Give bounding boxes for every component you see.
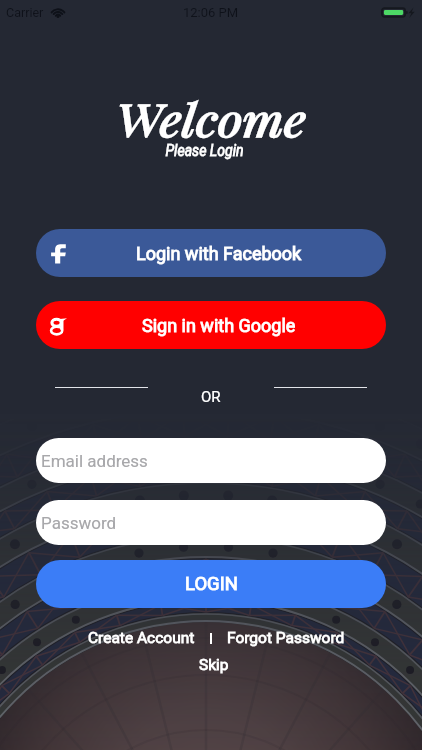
button[interactable]: LOGIN bbox=[36, 560, 386, 608]
staticText: Carrier bbox=[6, 5, 44, 20]
button[interactable]: Create Account bbox=[86, 627, 197, 649]
button[interactable]: Sign in with Google bbox=[36, 301, 386, 349]
staticText: Sign in with Google bbox=[142, 315, 296, 336]
button[interactable]: Email address bbox=[36, 438, 386, 483]
button[interactable]: Login with Facebook bbox=[36, 229, 386, 277]
button[interactable]: Password bbox=[36, 500, 386, 545]
staticText: Login with Facebook bbox=[136, 243, 302, 264]
staticText: OR bbox=[201, 388, 221, 406]
staticText: Skip bbox=[199, 656, 229, 674]
staticText: Please Login bbox=[165, 141, 244, 160]
staticText: Password bbox=[41, 513, 117, 533]
staticText: LOGIN bbox=[185, 573, 238, 595]
staticText: Forgot Password bbox=[227, 629, 345, 647]
staticText: Create Account bbox=[88, 629, 195, 647]
staticText: Welcome bbox=[116, 90, 306, 148]
button[interactable]: Skip bbox=[191, 654, 237, 676]
staticText: 12:06 PM bbox=[183, 5, 239, 20]
button[interactable]: Forgot Password bbox=[225, 627, 347, 649]
staticText: Email address bbox=[41, 451, 148, 471]
